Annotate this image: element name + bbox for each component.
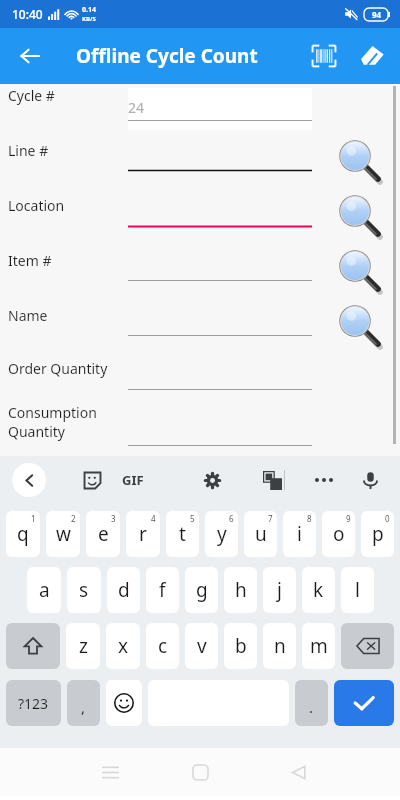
staticText: b bbox=[235, 633, 247, 659]
button[interactable]: i bbox=[283, 511, 316, 557]
button[interactable]: e bbox=[86, 511, 120, 557]
button[interactable]: . bbox=[295, 680, 328, 726]
staticText: o bbox=[333, 521, 345, 547]
button[interactable] bbox=[128, 366, 312, 392]
button[interactable]: x bbox=[106, 623, 140, 669]
staticText: 6 bbox=[229, 513, 234, 524]
button[interactable]: u bbox=[244, 511, 277, 557]
staticText: 7 bbox=[268, 513, 273, 524]
staticText: 3 bbox=[111, 513, 116, 524]
button[interactable]: Clear bbox=[348, 32, 396, 80]
button[interactable]: f bbox=[146, 567, 179, 613]
staticText: GIF bbox=[122, 471, 144, 489]
button[interactable]: Shift bbox=[6, 623, 60, 669]
button[interactable]: l bbox=[341, 567, 374, 613]
button[interactable]: h bbox=[224, 567, 257, 613]
button[interactable]: ?123 bbox=[6, 680, 61, 726]
button[interactable] bbox=[128, 312, 312, 338]
staticText: Item # bbox=[8, 251, 52, 270]
button[interactable] bbox=[128, 203, 312, 229]
staticText: Name bbox=[8, 306, 48, 325]
button[interactable]: Back bbox=[274, 748, 322, 796]
button[interactable]: c bbox=[146, 623, 179, 669]
button[interactable]: Stickers bbox=[62, 458, 122, 502]
staticText: ?123 bbox=[18, 694, 49, 713]
button[interactable]: p bbox=[361, 511, 394, 557]
staticText: j bbox=[277, 577, 282, 603]
button[interactable]: Search Location bbox=[332, 189, 388, 245]
staticText: w bbox=[56, 521, 71, 547]
button[interactable]: k bbox=[302, 567, 335, 613]
button[interactable]: Search Item # bbox=[332, 244, 388, 300]
staticText: Cycle # bbox=[8, 86, 55, 105]
button[interactable]: Backspace bbox=[341, 623, 394, 669]
staticText: 8 bbox=[307, 513, 312, 524]
button[interactable]: Voice input bbox=[348, 458, 392, 502]
staticText: n bbox=[274, 633, 286, 659]
button[interactable]: b bbox=[224, 623, 257, 669]
button[interactable]: q bbox=[6, 511, 40, 557]
button[interactable]: Translate bbox=[242, 458, 302, 502]
button[interactable]: Scan barcode bbox=[300, 32, 348, 80]
button[interactable]: Back bbox=[6, 32, 54, 80]
staticText: 1 bbox=[31, 513, 36, 524]
staticText: r bbox=[139, 521, 147, 547]
button[interactable]: Recent apps bbox=[86, 748, 134, 796]
staticText: a bbox=[39, 577, 50, 603]
button[interactable]: , bbox=[67, 680, 100, 726]
button[interactable]: Emoji bbox=[106, 680, 142, 726]
button[interactable]: t bbox=[166, 511, 199, 557]
button[interactable]: Settings bbox=[182, 458, 242, 502]
staticText: 24 bbox=[128, 98, 145, 117]
button[interactable]: z bbox=[66, 623, 100, 669]
staticText: 94 bbox=[372, 9, 382, 20]
button[interactable]: y bbox=[205, 511, 238, 557]
button[interactable]: v bbox=[185, 623, 218, 669]
staticText: 0.14 bbox=[82, 5, 96, 15]
button[interactable]: w bbox=[46, 511, 80, 557]
staticText: s bbox=[79, 577, 89, 603]
button[interactable]: m bbox=[302, 623, 335, 669]
staticText: KB/S bbox=[82, 15, 96, 23]
staticText: z bbox=[79, 633, 88, 659]
button[interactable] bbox=[128, 422, 312, 448]
button[interactable]: r bbox=[126, 511, 160, 557]
button[interactable] bbox=[128, 257, 312, 283]
button[interactable]: GIF bbox=[122, 458, 182, 502]
button[interactable] bbox=[128, 147, 312, 173]
button[interactable]: Back bbox=[12, 463, 46, 497]
button[interactable]: 24 bbox=[128, 97, 312, 123]
button[interactable]: g bbox=[185, 567, 218, 613]
button[interactable]: Search Name bbox=[332, 299, 388, 355]
staticText: 9 bbox=[346, 513, 351, 524]
button[interactable]: Enter bbox=[334, 680, 394, 726]
staticText: 4 bbox=[151, 513, 156, 524]
button[interactable]: a bbox=[27, 567, 61, 613]
button[interactable]: s bbox=[67, 567, 101, 613]
staticText: d bbox=[118, 577, 130, 603]
button[interactable]: j bbox=[263, 567, 296, 613]
button[interactable]: Search Line # bbox=[332, 134, 388, 190]
staticText: 10:40 bbox=[12, 6, 43, 22]
staticText: Offline Cycle Count bbox=[76, 43, 258, 69]
staticText: 5 bbox=[190, 513, 195, 524]
staticText: Consumption bbox=[8, 403, 97, 422]
staticText: q bbox=[17, 521, 29, 547]
staticText: c bbox=[158, 633, 168, 659]
button[interactable]: More options bbox=[302, 458, 346, 502]
staticText: k bbox=[313, 577, 324, 603]
staticText: p bbox=[372, 521, 384, 547]
staticText: 2 bbox=[71, 513, 76, 524]
staticText: y bbox=[217, 521, 227, 547]
staticText: g bbox=[196, 577, 208, 603]
button[interactable]: o bbox=[322, 511, 355, 557]
staticText: Location bbox=[8, 196, 65, 215]
staticText: l bbox=[355, 577, 360, 603]
staticText: f bbox=[159, 577, 166, 603]
button[interactable]: Home bbox=[176, 748, 224, 796]
staticText: v bbox=[197, 633, 207, 659]
staticText: t bbox=[179, 521, 186, 547]
button[interactable]: d bbox=[107, 567, 140, 613]
button[interactable]: n bbox=[263, 623, 296, 669]
